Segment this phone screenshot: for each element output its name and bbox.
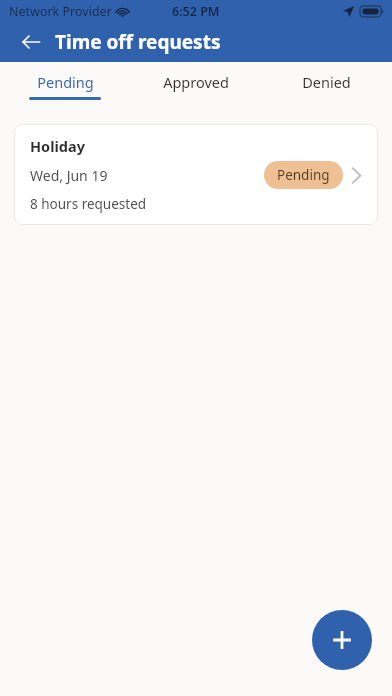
staticText: Holiday: [30, 136, 85, 156]
staticText: 6:52 PM: [172, 3, 220, 20]
button[interactable]: Back: [12, 23, 50, 61]
staticText: Pending: [277, 166, 330, 184]
staticText: 8 hours requested: [30, 195, 147, 213]
button[interactable]: Approved: [130, 62, 261, 110]
staticText: Time off requests: [55, 29, 221, 55]
button[interactable]: Pending: [0, 62, 130, 110]
staticText: Wed, Jun 19: [30, 166, 108, 185]
button[interactable]: Holiday: [14, 124, 378, 225]
staticText: Denied: [302, 72, 351, 92]
staticText: Network Provider: [9, 3, 112, 20]
button[interactable]: Add time off request: [312, 610, 372, 670]
staticText: Pending: [37, 72, 94, 92]
button[interactable]: Denied: [261, 62, 392, 110]
staticText: Approved: [163, 72, 229, 92]
